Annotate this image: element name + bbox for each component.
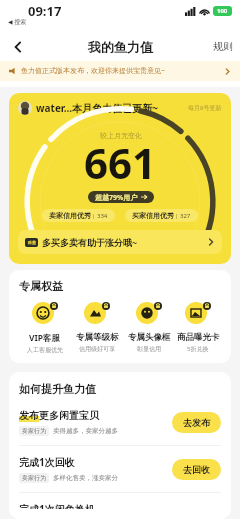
button[interactable]: 规则	[213, 40, 233, 53]
button[interactable]: 专属头像框	[123, 302, 175, 353]
staticText: 卖家行为	[22, 427, 46, 435]
staticText: VIP客服	[29, 332, 61, 344]
staticText: 信用级好可享	[79, 345, 115, 353]
staticText: 多样化售卖，涨卖家分	[53, 474, 118, 482]
staticText: 卖得越多，卖家分越多	[53, 427, 118, 435]
staticText: water...本月鱼力值已更新~	[36, 101, 158, 115]
staticText: 人工客服优先	[27, 346, 63, 354]
staticText: 我的鱼力值	[88, 39, 153, 55]
staticText: 如何提升鱼力值	[19, 382, 96, 396]
button[interactable]: 买家信用优秀	[125, 209, 198, 222]
button[interactable]: 去发布	[172, 412, 221, 433]
button[interactable]: 超越79%用户	[88, 191, 154, 203]
staticText: 去回收	[183, 464, 210, 475]
staticText: 卖家信用优秀	[49, 211, 91, 220]
staticText: 专属等级标	[76, 332, 119, 343]
staticText: 更多闲置宝贝	[39, 409, 99, 422]
staticText: 彰显信用	[137, 345, 161, 353]
button[interactable]: 鱼力值正式版本发布，欢迎你来提供宝贵意见~	[0, 61, 240, 81]
staticText: 661	[84, 134, 157, 191]
staticText: 买家信用优秀	[132, 211, 174, 220]
button[interactable]: 科普	[18, 230, 222, 254]
staticText: 327	[180, 212, 191, 220]
staticText: 发布	[19, 409, 39, 422]
staticText: 334	[97, 212, 108, 220]
staticText: 多买多卖有助于涨分哦~	[42, 236, 138, 248]
staticText: 商品曝光卡	[177, 332, 220, 343]
staticText: 每月8号更新	[188, 104, 222, 112]
staticText: |	[92, 212, 96, 220]
staticText: 09:17	[28, 2, 62, 20]
button[interactable]: 卖家信用优秀	[42, 209, 115, 222]
staticText: 科普	[28, 240, 36, 245]
staticText: 100	[217, 7, 228, 15]
staticText: 超越79%用户	[95, 193, 138, 201]
button[interactable]: VIP客服	[19, 302, 71, 354]
button[interactable]: Back	[6, 35, 30, 59]
staticText: 完成1次闲鱼换机	[19, 502, 95, 509]
staticText: ◀ 搜索	[8, 18, 27, 26]
button[interactable]: 去回收	[172, 459, 221, 480]
staticText: 去发布	[183, 417, 210, 428]
button[interactable]: 商品曝光卡	[175, 302, 221, 353]
staticText: 专属权益	[19, 279, 63, 293]
staticText: 5折兑换	[187, 345, 209, 353]
button[interactable]: 专属等级标	[71, 302, 123, 353]
staticText: 专属头像框	[128, 332, 171, 343]
staticText: |	[175, 212, 179, 220]
staticText: 鱼力值正式版本发布，欢迎你来提供宝贵意见~	[21, 66, 166, 76]
staticText: 较上月无变化	[100, 131, 142, 140]
staticText: 完成1次回收	[19, 455, 75, 469]
staticText: 规则	[213, 40, 233, 53]
staticText: 卖家行为	[22, 474, 46, 482]
